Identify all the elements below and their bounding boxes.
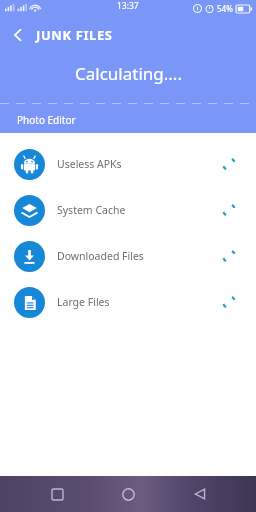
button[interactable]: Back (185, 479, 215, 509)
other: Scanning (220, 293, 238, 311)
button[interactable]: Recents (42, 479, 72, 509)
staticText: 13:37 (117, 0, 139, 12)
staticText: Downloaded Files (57, 249, 144, 263)
staticText: 54% (217, 3, 233, 14)
staticText: Photo Editor (17, 113, 76, 127)
other: Scanning (220, 201, 238, 219)
staticText: System Cache (57, 203, 126, 217)
button[interactable]: Home (113, 479, 143, 509)
staticText: Useless APKs (57, 157, 122, 171)
staticText: Large Files (57, 295, 110, 309)
button[interactable]: Downloaded Files (0, 233, 256, 279)
staticText: JUNK FILES (36, 26, 113, 44)
other: Scanning (220, 155, 238, 173)
button[interactable]: Back (0, 18, 36, 52)
staticText: Calculating.... (75, 62, 182, 85)
button[interactable]: System Cache (0, 187, 256, 233)
button[interactable]: Useless APKs (0, 141, 256, 187)
button[interactable]: Large Files (0, 279, 256, 325)
other: Scanning (220, 247, 238, 265)
